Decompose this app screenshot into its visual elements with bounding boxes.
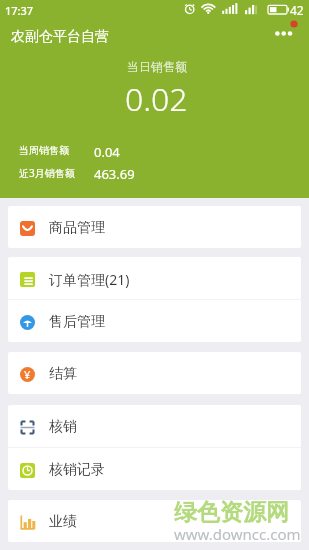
button[interactable]: More options <box>268 20 298 48</box>
staticText: 42 <box>290 2 304 18</box>
button[interactable]: 业绩 <box>8 500 301 542</box>
staticText: 订单管理(21) <box>49 270 130 289</box>
staticText: 核销 <box>49 418 77 436</box>
staticText: 17:37 <box>5 3 34 18</box>
staticText: 0.04 <box>94 143 120 161</box>
staticText: 0.02 <box>125 77 188 121</box>
staticText: 绿色资源网 <box>174 498 289 527</box>
staticText: 结算 <box>49 365 77 383</box>
staticText: 当周销售额 <box>19 144 69 157</box>
staticText: 商品管理 <box>49 219 105 237</box>
staticText: 近3月销售额 <box>19 166 75 180</box>
staticText: 463.69 <box>94 165 135 183</box>
staticText: 农副仓平台自营 <box>11 28 109 46</box>
button[interactable]: 售后管理 <box>8 300 301 342</box>
button[interactable]: 订单管理(21) <box>8 257 301 299</box>
button[interactable]: 核销记录 <box>8 448 301 490</box>
button[interactable]: 核销 <box>8 405 301 447</box>
button[interactable]: ¥ <box>8 352 301 394</box>
staticText: www.downcc.com <box>174 524 301 544</box>
staticText: 当日销售额 <box>127 59 187 74</box>
staticText: ¥ <box>24 367 31 382</box>
button[interactable]: 商品管理 <box>8 206 301 248</box>
staticText: 售后管理 <box>49 313 105 331</box>
staticText: 核销记录 <box>49 461 105 479</box>
staticText: 业绩 <box>49 513 77 531</box>
